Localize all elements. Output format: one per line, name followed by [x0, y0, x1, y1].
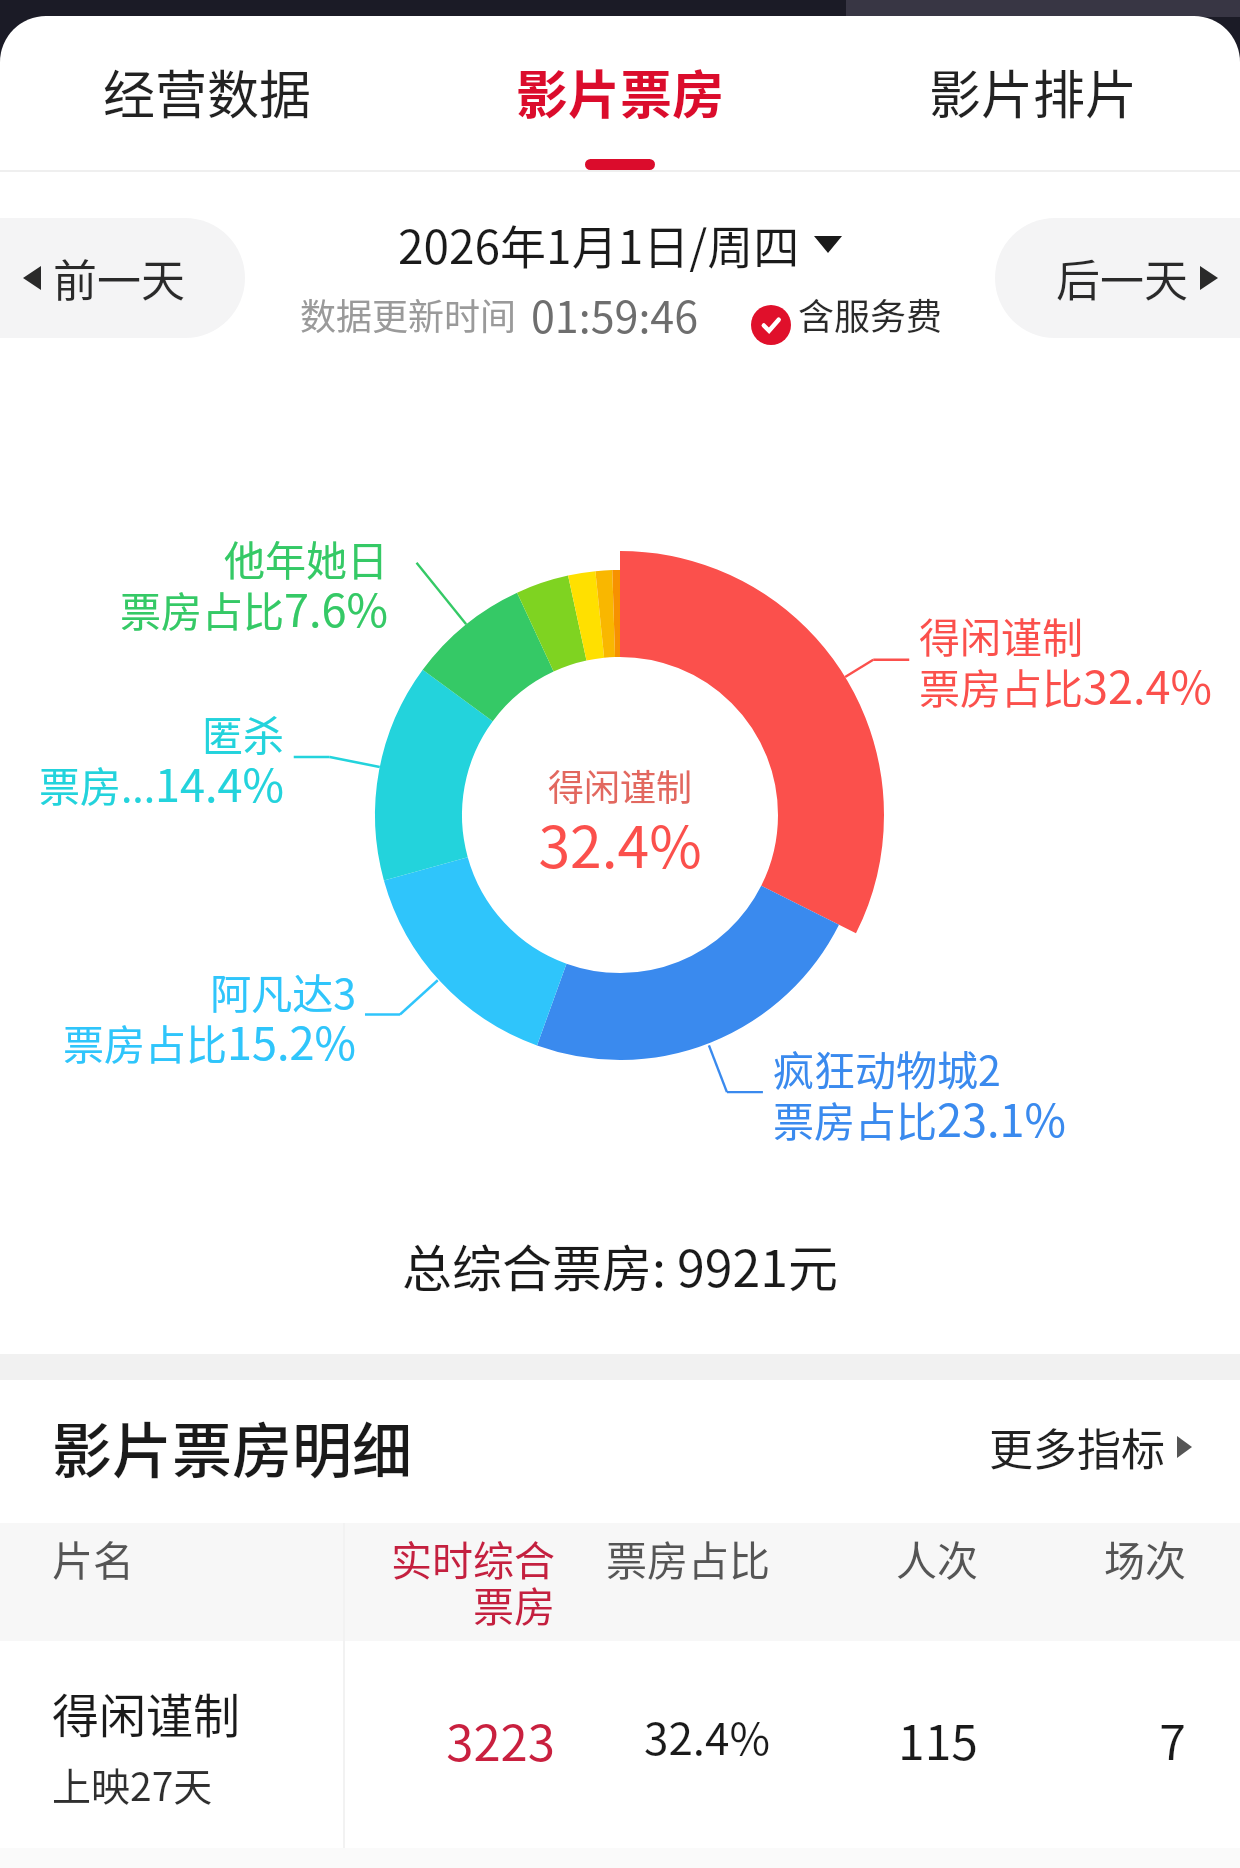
other: Service fee included: [751, 305, 791, 345]
staticText: 含服务费: [798, 288, 943, 340]
staticText: 32.4%: [370, 1704, 770, 1768]
staticText: 01:59:46: [531, 283, 699, 345]
button[interactable]: 影片排片: [827, 17, 1240, 165]
staticText: 实时综合 票房: [155, 1528, 555, 1634]
button[interactable]: 经营数据: [0, 17, 414, 165]
staticText: 总综合票房: 9921元: [402, 1229, 839, 1301]
button[interactable]: 更多指标: [989, 1415, 1192, 1479]
staticText: 115: [578, 1704, 978, 1774]
button[interactable]: 得闲谨制: [0, 1641, 1240, 1868]
staticText: 他年她日 票房占比7.6%: [0, 528, 388, 640]
staticText: 场次: [786, 1528, 1186, 1587]
staticText: 得闲谨制 票房占比32.4%: [919, 605, 1240, 717]
staticText: 上映27天: [52, 1756, 213, 1812]
staticText: 匿杀 票房...14.4%: [0, 703, 284, 815]
staticText: 7: [786, 1704, 1186, 1774]
staticText: 人次: [578, 1528, 978, 1587]
staticText: 更多指标: [989, 1415, 1165, 1479]
staticText: 得闲谨制: [370, 759, 870, 811]
staticText: 疯狂动物城2 票房占比23.1%: [773, 1038, 1240, 1150]
staticText: 影片票房明细: [52, 1403, 412, 1490]
staticText: 影片排片: [929, 54, 1138, 129]
staticText: 数据更新时间: [300, 288, 517, 340]
staticText: 票房占比: [370, 1528, 770, 1587]
staticText: 后一天: [1056, 246, 1188, 310]
staticText: 前一天: [53, 246, 185, 310]
staticText: 3223: [155, 1704, 555, 1775]
button[interactable]: 影片票房: [414, 17, 827, 165]
staticText: 经营数据: [103, 54, 312, 129]
button[interactable]: 后一天: [995, 218, 1240, 338]
button[interactable]: 2026年1月1日/周四: [398, 211, 842, 278]
staticText: 片名: [52, 1528, 134, 1587]
other: Pick date: [814, 236, 842, 253]
button[interactable]: 前一天: [0, 218, 245, 338]
staticText: 阿凡达3 票房占比15.2%: [0, 961, 356, 1073]
staticText: 2026年1月1日/周四: [398, 211, 800, 278]
staticText: 得闲谨制: [52, 1678, 240, 1746]
staticText: 影片票房: [516, 54, 725, 129]
button[interactable]: Service fee included: [751, 288, 943, 340]
staticText: 32.4%: [370, 802, 870, 885]
